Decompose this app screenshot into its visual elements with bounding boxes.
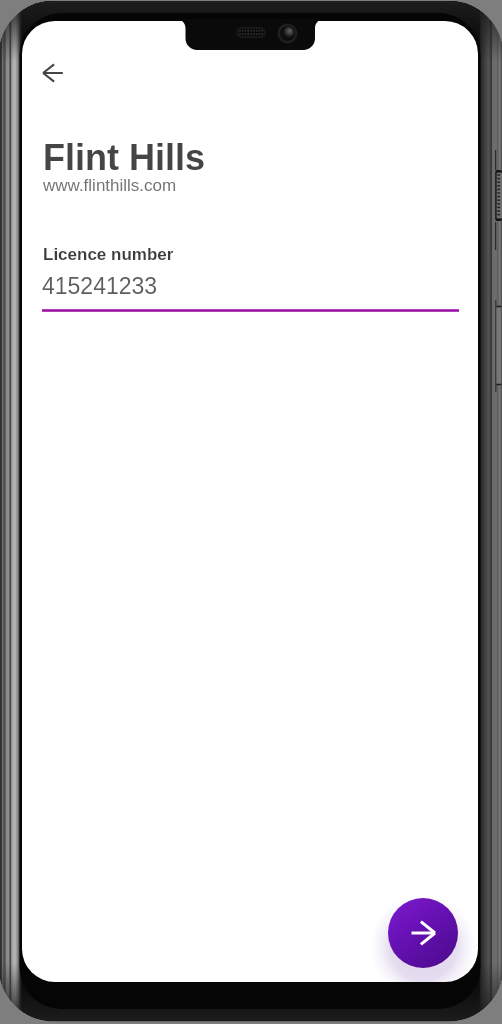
- button[interactable]: 415241233: [42, 265, 460, 313]
- staticText: 415241233: [42, 273, 158, 299]
- staticText: www.flinthills.com: [43, 176, 177, 195]
- button[interactable]: Next: [388, 898, 458, 968]
- staticText: Licence number: [43, 245, 174, 264]
- button[interactable]: Back: [31, 51, 75, 95]
- staticText: Flint Hills: [43, 137, 205, 177]
